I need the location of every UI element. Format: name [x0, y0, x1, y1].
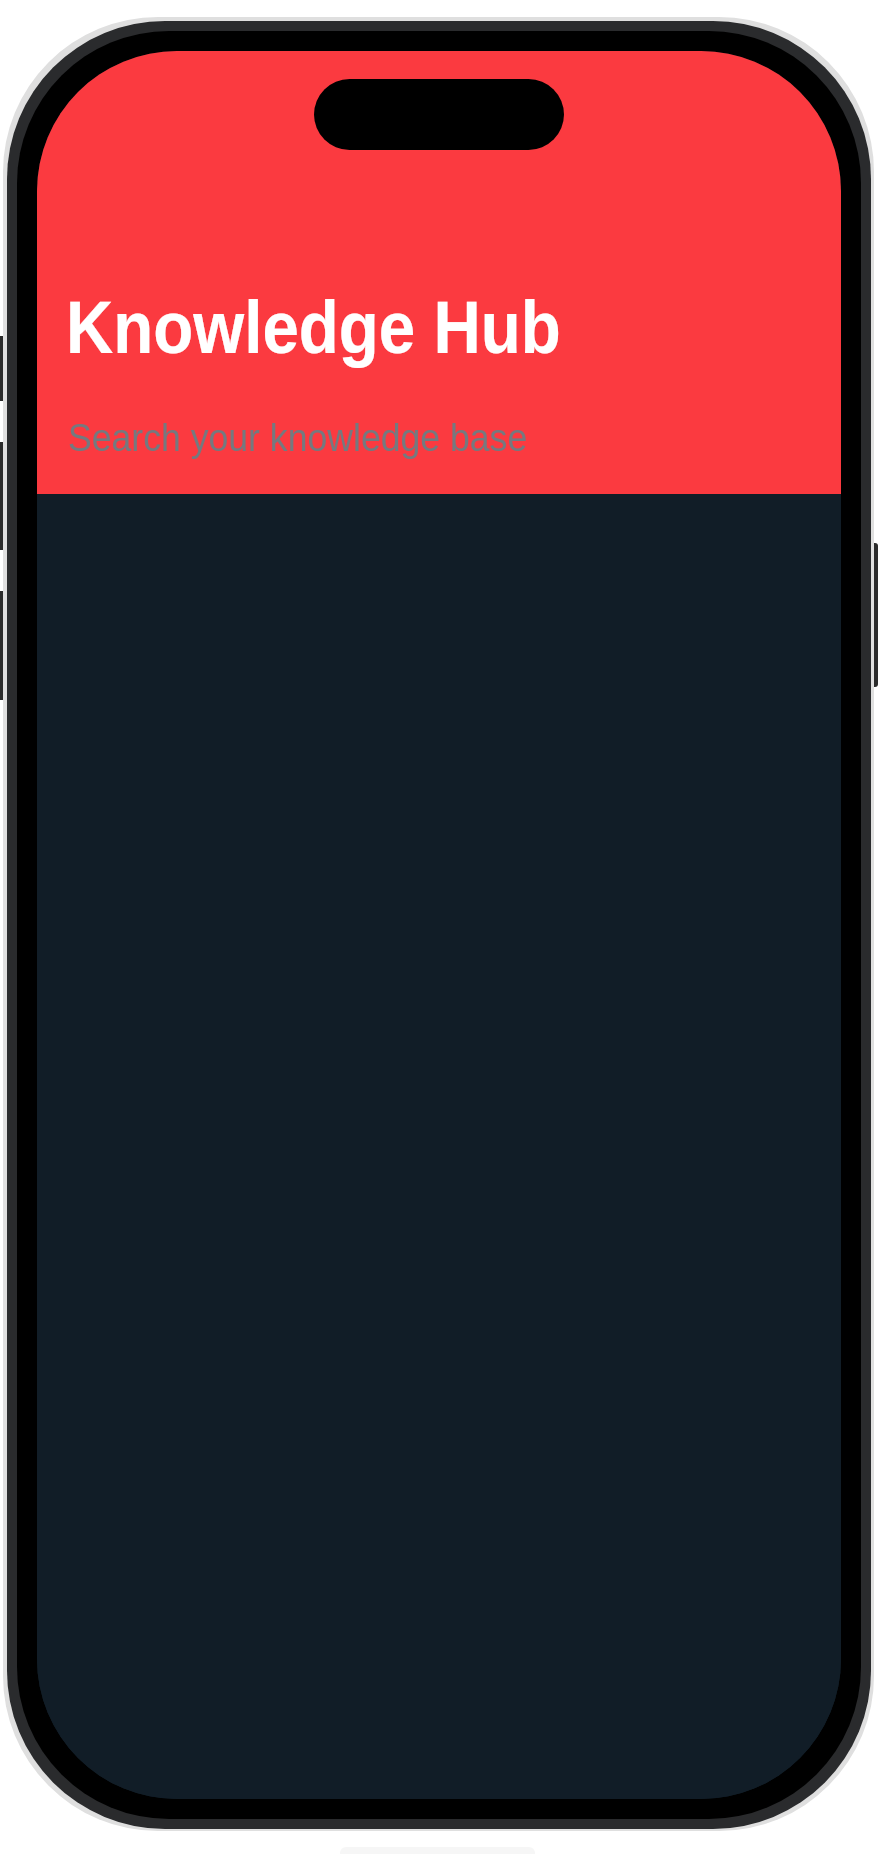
staticText: Knowledge Hub — [66, 285, 561, 369]
staticText: Search your knowledge base — [68, 417, 528, 459]
button[interactable]: Search your knowledge base — [68, 417, 559, 459]
